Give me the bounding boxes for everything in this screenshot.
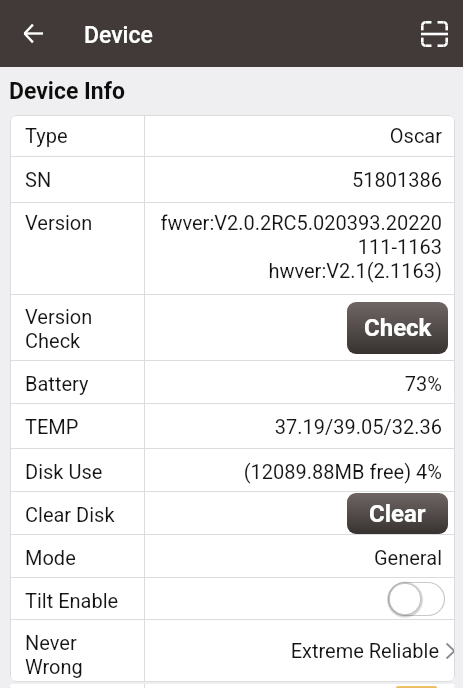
staticText: Device — [84, 22, 153, 49]
button[interactable]: Check — [347, 302, 448, 354]
staticText: Tilt Enable — [25, 589, 119, 612]
staticText: Clear Disk — [25, 503, 115, 526]
button[interactable]: TEMP — [10, 404, 455, 448]
button[interactable]: Tilt Enable — [388, 581, 445, 617]
button[interactable]: Never Wrong — [10, 620, 455, 681]
button[interactable]: Back — [0, 0, 66, 67]
button[interactable]: Clear — [347, 493, 448, 534]
button[interactable] — [10, 684, 455, 688]
button[interactable]: Tilt Enable — [10, 578, 455, 619]
button[interactable]: Version — [10, 203, 455, 294]
staticText: Type — [25, 124, 68, 147]
button[interactable]: Version Check — [10, 295, 455, 360]
staticText: Version — [25, 211, 93, 234]
staticText: Check — [364, 314, 432, 342]
staticText: Version Check — [25, 305, 93, 353]
button[interactable]: SN — [10, 157, 455, 202]
staticText: General — [373, 546, 442, 569]
staticText: Battery — [25, 372, 89, 395]
staticText: (12089.88MB free) 4% — [243, 460, 442, 483]
staticText: Never Wrong — [25, 631, 83, 679]
button[interactable]: Scan — [406, 0, 463, 67]
staticText: TEMP — [25, 415, 79, 438]
staticText: fwver:V2.0.2RC5.020393.20220111-1163 hwv… — [151, 211, 442, 283]
staticText: Clear — [369, 500, 426, 528]
staticText: Oscar — [389, 124, 442, 147]
staticText: 51801386 — [352, 168, 442, 191]
staticText: Extreme Reliable — [290, 639, 439, 662]
staticText: 37.19/39.05/32.36 — [274, 415, 442, 438]
button[interactable]: Mode — [10, 535, 455, 577]
staticText: SN — [25, 168, 52, 191]
button[interactable]: Type — [10, 115, 455, 156]
staticText: Disk Use — [25, 460, 103, 483]
staticText: 73% — [404, 372, 442, 395]
staticText: Device Info — [9, 78, 125, 105]
staticText: Mode — [25, 546, 76, 569]
button[interactable]: Clear Disk — [10, 492, 455, 534]
button[interactable]: Battery — [10, 361, 455, 403]
button[interactable]: Disk Use — [10, 449, 455, 491]
